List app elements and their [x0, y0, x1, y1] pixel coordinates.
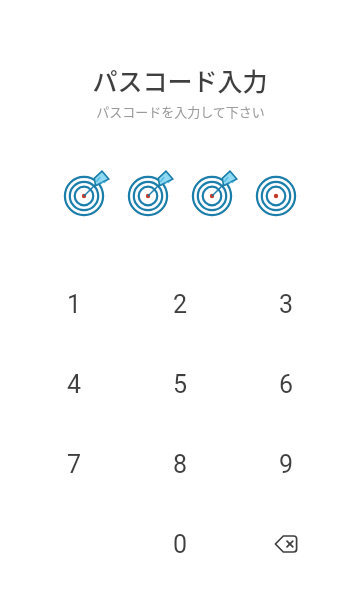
button[interactable]: 0 — [127, 504, 233, 584]
staticText: 1 — [67, 290, 82, 319]
button[interactable]: 2 — [127, 264, 233, 344]
staticText: 0 — [173, 530, 188, 559]
staticText: 9 — [279, 450, 294, 479]
staticText: 7 — [67, 450, 82, 479]
button[interactable]: 4 — [21, 344, 127, 424]
button[interactable]: 5 — [127, 344, 233, 424]
other: Backspace — [262, 520, 310, 568]
button[interactable]: 7 — [21, 424, 127, 504]
button[interactable]: 6 — [233, 344, 339, 424]
staticText: パスコードを入力して下さい — [96, 102, 265, 121]
staticText: 6 — [279, 370, 294, 399]
button[interactable]: 9 — [233, 424, 339, 504]
staticText: パスコード入力 — [92, 62, 268, 98]
button[interactable]: 1 — [21, 264, 127, 344]
staticText: 4 — [67, 370, 82, 399]
staticText: 5 — [173, 370, 188, 399]
button[interactable]: Backspace — [233, 504, 339, 584]
button[interactable]: 8 — [127, 424, 233, 504]
staticText: 2 — [173, 290, 188, 319]
staticText: 3 — [279, 290, 294, 319]
button[interactable]: 3 — [233, 264, 339, 344]
staticText: 8 — [173, 450, 188, 479]
